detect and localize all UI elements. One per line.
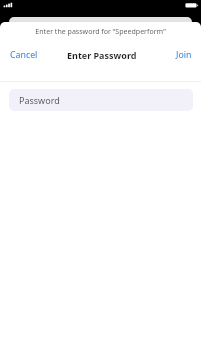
button[interactable]: Join [168,44,201,66]
staticText: Join [176,49,192,61]
staticText: Enter the password for “Speedperform” [0,26,201,36]
button[interactable]: Password field [9,89,193,111]
staticText: Cancel [10,49,38,61]
button[interactable]: Cancel [0,44,46,66]
staticText: Enter Password [67,49,137,61]
staticText: Password [19,94,60,106]
